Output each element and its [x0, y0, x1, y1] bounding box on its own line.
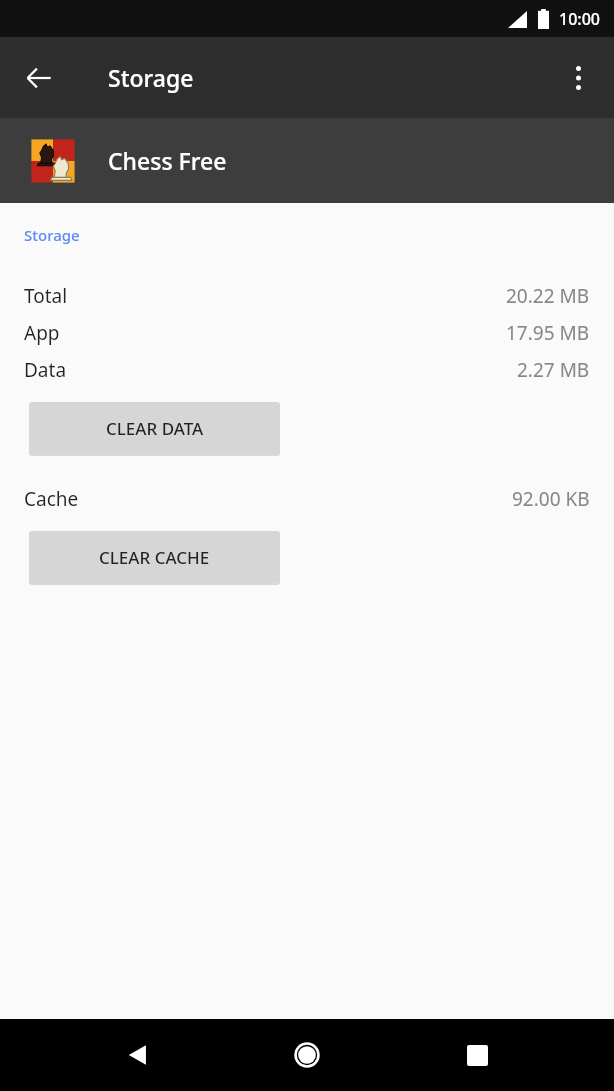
staticText: 17.95 MB	[506, 320, 590, 346]
button[interactable]: Total	[0, 283, 614, 309]
staticText: Chess Free	[108, 145, 227, 176]
button[interactable]: Chess Free	[0, 118, 614, 203]
button[interactable]: Data	[0, 357, 614, 383]
staticText: Storage	[24, 225, 80, 245]
button[interactable]: Back	[106, 1023, 170, 1087]
staticText: Cache	[24, 486, 79, 512]
staticText: Data	[24, 357, 67, 383]
button[interactable]: CLEAR DATA	[29, 402, 280, 454]
staticText: Storage	[108, 62, 194, 93]
button[interactable]: CLEAR CACHE	[29, 531, 280, 583]
staticText: 20.22 MB	[506, 283, 590, 309]
button[interactable]: Recent apps	[445, 1023, 509, 1087]
button[interactable]: App	[0, 320, 614, 346]
staticText: 10:00	[559, 8, 600, 30]
staticText: CLEAR DATA	[106, 417, 204, 440]
staticText: CLEAR CACHE	[99, 546, 210, 569]
button[interactable]: Back	[10, 49, 68, 107]
staticText: Total	[24, 283, 68, 309]
staticText: 92.00 KB	[512, 486, 590, 512]
button[interactable]: Cache	[0, 486, 614, 512]
button[interactable]: Home	[275, 1023, 339, 1087]
staticText: 2.27 MB	[517, 357, 590, 383]
staticText: App	[24, 320, 60, 346]
button[interactable]: More options	[550, 50, 606, 106]
